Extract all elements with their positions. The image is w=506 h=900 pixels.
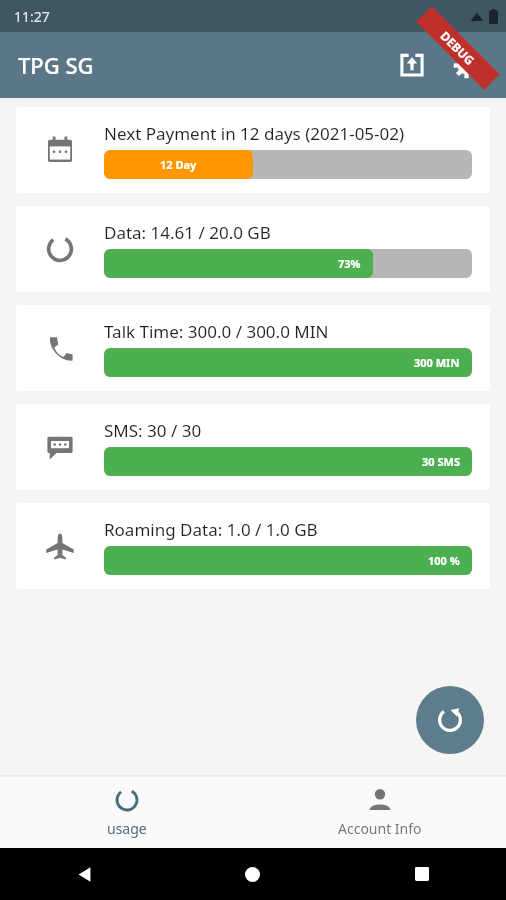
staticText: Talk Time: 300.0 / 300.0 MIN bbox=[104, 320, 329, 343]
button[interactable]: Account Info bbox=[253, 776, 506, 848]
button[interactable]: Settings bbox=[442, 41, 490, 89]
staticText: 300 MIN bbox=[414, 355, 460, 370]
button[interactable]: Talk Time: 300.0 / 300.0 MIN bbox=[16, 305, 490, 391]
staticText: 12 Day bbox=[160, 157, 197, 172]
button[interactable]: Next Payment in 12 days (2021-05-02) bbox=[16, 107, 490, 193]
staticText: Account Info bbox=[338, 819, 422, 838]
staticText: Roaming Data: 1.0 / 1.0 GB bbox=[104, 518, 318, 541]
button[interactable]: Refresh bbox=[416, 686, 484, 754]
button[interactable]: Data: 14.61 / 20.0 GB bbox=[16, 206, 490, 292]
staticText: 100 % bbox=[428, 553, 460, 568]
staticText: 11:27 bbox=[14, 7, 50, 26]
staticText: SMS: 30 / 30 bbox=[104, 419, 202, 442]
button[interactable]: Open in browser bbox=[388, 41, 436, 89]
staticText: 73% bbox=[338, 256, 361, 271]
button[interactable]: Roaming Data: 1.0 / 1.0 GB bbox=[16, 503, 490, 589]
staticText: TPG SG bbox=[18, 50, 94, 80]
button[interactable]: usage bbox=[0, 776, 253, 848]
staticText: 30 SMS bbox=[422, 454, 460, 469]
staticText: Next Payment in 12 days (2021-05-02) bbox=[104, 122, 405, 145]
staticText: usage bbox=[107, 819, 147, 838]
staticText: DEBUG bbox=[437, 27, 478, 68]
staticText: Data: 14.61 / 20.0 GB bbox=[104, 221, 271, 244]
button[interactable]: SMS: 30 / 30 bbox=[16, 404, 490, 490]
